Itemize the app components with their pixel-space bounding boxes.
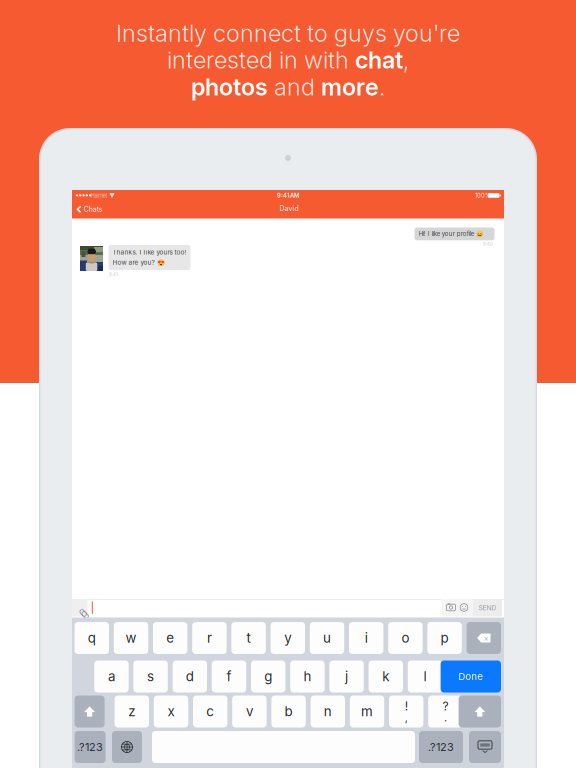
button[interactable]: k [369,660,403,692]
button[interactable]: Shift [75,695,105,727]
staticText: v [246,703,253,719]
staticText: q [88,630,96,646]
staticText: j [345,668,348,684]
button[interactable]: Hide keyboard [469,731,501,763]
staticText: 9:40 [483,242,493,247]
button[interactable]: v [232,695,267,727]
staticText: and [268,73,321,101]
button[interactable]: f [212,660,246,692]
staticText: h [303,668,311,684]
button[interactable]: Next keyboard [112,731,142,763]
staticText: ! [405,699,408,713]
staticText: interested in with [167,46,355,74]
staticText: 9:41 [109,272,118,277]
staticText: p [441,630,449,646]
staticText: d [186,668,194,684]
staticText: n [324,703,332,719]
staticText: × [483,633,488,643]
staticText: x [167,703,174,719]
button[interactable]: p [427,622,462,654]
staticText: w [125,630,136,646]
staticText: SEND [478,604,496,612]
staticText: , [405,711,408,724]
staticText: k [382,668,389,684]
button[interactable]: q [75,622,109,654]
button[interactable]: a [94,660,129,692]
staticText: u [323,630,331,646]
button[interactable]: h [290,660,325,692]
button[interactable]: Emoji [458,601,469,614]
staticText: f [226,668,231,684]
staticText: more [321,73,379,101]
button[interactable]: b [271,695,306,727]
staticText: 9:41 AM [277,192,299,199]
button[interactable]: n [311,695,345,727]
button[interactable]: r [192,622,227,654]
staticText: , [403,46,409,74]
staticText: a [108,668,115,684]
button[interactable]: c [193,695,227,727]
staticText: .?123 [77,740,103,754]
staticText: Chats [84,205,103,213]
button[interactable]: u [310,622,344,654]
button[interactable]: .?123 [75,731,106,763]
staticText: . [444,711,447,724]
staticText: i [365,630,368,646]
staticText: t [247,630,251,646]
button[interactable]: x [154,695,188,727]
staticText: z [128,703,135,719]
staticText: Instantly connect to guys you're [116,19,460,47]
button[interactable]: d [173,660,207,692]
staticText: c [206,703,214,719]
staticText: photos [191,73,268,101]
button[interactable]: Camera [445,601,456,614]
button[interactable]: z [115,695,149,727]
staticText: s [147,668,154,684]
staticText: Thanks. I like yours too! [112,248,186,256]
button[interactable]: Chats [76,203,106,215]
staticText: m [361,703,373,719]
button[interactable]: Attach [72,599,87,616]
button[interactable]: m [350,695,384,727]
staticText: chat [355,46,403,74]
button[interactable]: ! [389,695,423,727]
button[interactable]: o [388,622,423,654]
staticText: y [284,630,291,646]
staticText: Hi! I like your profile 😄 [419,230,483,237]
button[interactable]: SEND [473,599,502,616]
staticText: David [279,204,298,213]
staticText: .?123 [428,740,454,754]
button[interactable]: Backspace [467,622,501,654]
button[interactable]: ? [428,695,463,727]
staticText: b [285,703,293,719]
button[interactable]: s [133,660,168,692]
staticText: How are you? 😍 [112,259,164,266]
button[interactable]: .?123 [419,731,463,763]
button[interactable]: w [114,622,148,654]
staticText: g [264,668,272,684]
staticText: e [166,630,174,646]
button[interactable]: i [349,622,383,654]
button[interactable]: g [251,660,285,692]
staticText: 100% [475,192,491,199]
staticText: Done [458,671,483,682]
button[interactable]: l [408,660,442,692]
button[interactable]: e [153,622,187,654]
staticText: r [207,630,212,646]
staticText: l [423,668,426,684]
button[interactable]: t [231,622,266,654]
staticText: o [401,630,409,646]
button[interactable]: y [271,622,305,654]
staticText: . [379,73,385,101]
button[interactable]: Done [441,660,501,692]
button[interactable]: j [329,660,364,692]
staticText: ? [442,699,448,713]
staticText: Harriet [90,192,107,199]
button[interactable]: Shift [459,695,501,727]
